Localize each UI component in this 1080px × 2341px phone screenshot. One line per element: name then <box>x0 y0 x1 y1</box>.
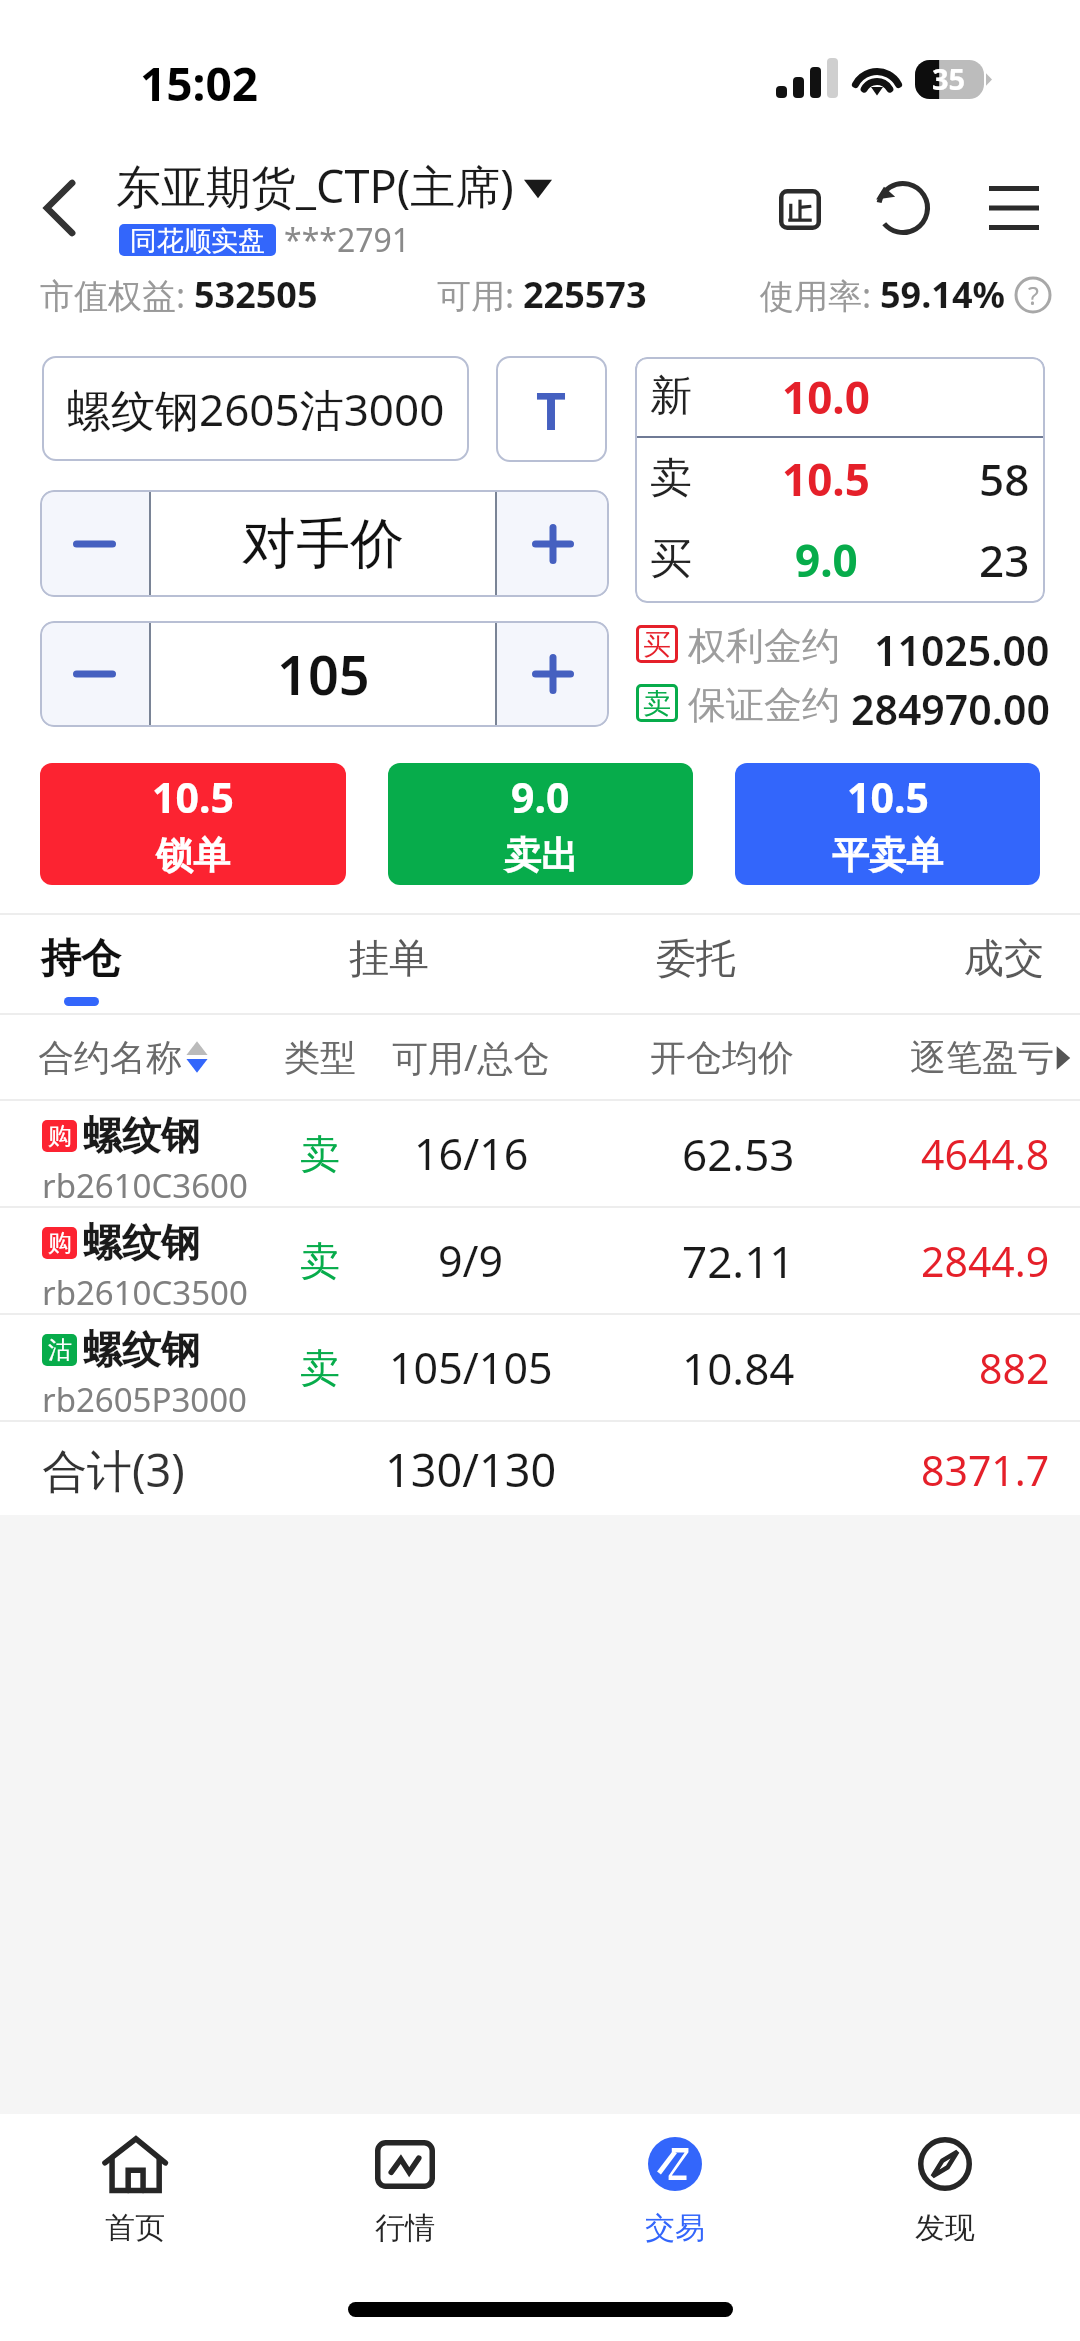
staticText: 9.0 <box>511 769 570 825</box>
staticText: 开仓均价 <box>650 1035 794 1080</box>
button[interactable]: 沽 <box>0 1315 1080 1420</box>
button[interactable]: 对手价 <box>151 490 495 597</box>
button[interactable]: 发现 <box>810 2114 1080 2264</box>
staticText: 59.14% <box>880 270 1005 319</box>
staticText: 逐笔盈亏 <box>910 1035 1054 1080</box>
staticText: 10.5 <box>847 769 929 825</box>
button[interactable]: 东亚期货_CTP(主席) <box>116 155 552 216</box>
staticText: 可用: <box>437 272 523 318</box>
staticText: 16/16 <box>414 1124 529 1183</box>
staticText: 卖 <box>300 1236 340 1286</box>
staticText: 130/130 <box>385 1439 557 1500</box>
staticText: 卖 <box>300 1129 340 1179</box>
staticText: 10.5 <box>782 449 870 509</box>
button[interactable]: Increase <box>497 621 609 727</box>
button[interactable]: 买 <box>635 519 1045 600</box>
staticText: 35 <box>932 59 966 98</box>
staticText: 2844.9 <box>921 1233 1050 1289</box>
button[interactable]: Increase <box>497 490 609 597</box>
staticText: 保证金约 <box>688 681 840 725</box>
staticText: 105/105 <box>389 1338 553 1397</box>
button[interactable]: Back <box>26 170 96 246</box>
staticText: 螺纹钢 <box>83 1218 200 1267</box>
button[interactable]: 购 <box>0 1101 1080 1206</box>
staticText: 持仓 <box>41 933 121 983</box>
staticText: 市值权益: <box>40 272 194 318</box>
staticText: 对手价 <box>242 510 404 578</box>
button[interactable]: 10.5 <box>735 763 1040 885</box>
button[interactable]: 新 <box>635 357 1045 436</box>
staticText: 买 <box>643 627 671 662</box>
staticText: 284970.00 <box>851 681 1050 725</box>
staticText: rb2610C3500 <box>42 1270 248 1315</box>
button[interactable]: 委托 <box>586 915 806 1013</box>
staticText: 首页 <box>105 2209 165 2247</box>
staticText: 东亚期货_CTP(主席) <box>116 155 514 216</box>
staticText: 58 <box>979 449 1030 509</box>
button[interactable]: 10.5 <box>40 763 346 885</box>
staticText: 10.5 <box>152 769 234 825</box>
staticText: 卖出 <box>504 832 578 879</box>
button[interactable]: 105 <box>151 621 495 727</box>
staticText: 9/9 <box>438 1231 504 1290</box>
staticText: 15:02 <box>140 52 259 115</box>
button[interactable]: 螺纹钢2605沽3000 <box>42 356 469 461</box>
button[interactable]: Help <box>1013 275 1053 315</box>
staticText: 螺纹钢 <box>83 1325 200 1374</box>
staticText: 62.53 <box>682 1124 795 1184</box>
staticText: 平卖单 <box>832 832 943 879</box>
button[interactable]: 卖 <box>635 438 1045 519</box>
staticText: 4644.8 <box>921 1126 1050 1182</box>
staticText: T <box>536 374 567 445</box>
staticText: 9.0 <box>795 530 858 590</box>
staticText: 发现 <box>915 2209 975 2247</box>
staticText: 权利金约 <box>688 622 840 666</box>
staticText: 卖 <box>643 686 671 721</box>
staticText: 882 <box>979 1340 1050 1396</box>
staticText: 行情 <box>375 2209 435 2247</box>
staticText: rb2610C3600 <box>42 1163 248 1208</box>
staticText: 挂单 <box>349 933 429 983</box>
staticText: 交易 <box>645 2209 705 2247</box>
staticText: 购 <box>48 1228 72 1258</box>
staticText: 成交 <box>964 933 1044 983</box>
staticText: 螺纹钢2605沽3000 <box>67 379 445 439</box>
staticText: 新 <box>650 370 692 423</box>
staticText: 8371.7 <box>921 1442 1050 1498</box>
button[interactable]: 9.0 <box>388 763 693 885</box>
staticText: 沽 <box>48 1335 72 1365</box>
button[interactable]: Decrease <box>40 490 149 597</box>
button[interactable]: Refresh <box>863 168 943 248</box>
button[interactable]: 挂单 <box>279 915 499 1013</box>
staticText: 10.84 <box>682 1338 795 1398</box>
staticText: 螺纹钢 <box>83 1111 200 1160</box>
staticText: 委托 <box>656 933 736 983</box>
staticText: 可用/总仓 <box>392 1033 550 1082</box>
staticText: 合计(3) <box>42 1439 185 1500</box>
staticText: 购 <box>48 1121 72 1151</box>
staticText: 买 <box>650 533 692 586</box>
button[interactable]: 购 <box>0 1208 1080 1313</box>
staticText: 23 <box>979 530 1030 590</box>
button[interactable]: Decrease <box>40 621 149 727</box>
staticText: 卖 <box>300 1343 340 1393</box>
staticText: 11025.00 <box>874 622 1050 666</box>
button[interactable]: 交易 <box>540 2114 810 2264</box>
staticText: 锁单 <box>156 832 230 879</box>
staticText: ? <box>1028 278 1039 312</box>
staticText: 同花顺实盘 <box>130 224 265 256</box>
button[interactable]: Keyboard mode <box>496 356 607 462</box>
button[interactable]: Orders <box>759 168 841 250</box>
staticText: 532505 <box>194 270 318 319</box>
staticText: 合约名称 <box>38 1035 182 1080</box>
button[interactable]: Menu <box>974 172 1054 244</box>
staticText: ***2791 <box>284 218 411 262</box>
staticText: 10.0 <box>782 367 870 427</box>
button[interactable]: 持仓 <box>0 915 191 1013</box>
staticText: 105 <box>277 637 370 711</box>
button[interactable]: 成交 <box>894 915 1080 1013</box>
button[interactable]: 首页 <box>0 2114 270 2264</box>
staticText: 类型 <box>284 1035 356 1080</box>
staticText: 225573 <box>523 270 647 319</box>
button[interactable]: 行情 <box>270 2114 540 2264</box>
